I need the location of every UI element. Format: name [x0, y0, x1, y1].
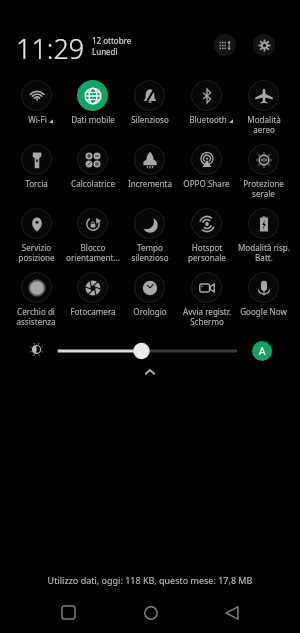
button[interactable]: Settings [253, 34, 275, 56]
button[interactable]: Protezione serale [235, 144, 292, 208]
button[interactable]: Hotspot personale [178, 208, 235, 272]
button[interactable]: Servizio posizione [8, 208, 64, 272]
button[interactable]: Home [130, 592, 171, 633]
staticText: Google Now [240, 306, 287, 317]
button[interactable]: Google Now [235, 272, 292, 336]
button[interactable]: Fotocamera [64, 272, 121, 336]
staticText: 11:29 [16, 30, 85, 67]
button[interactable]: OPPO Share [178, 144, 235, 208]
staticText: OPPO Share [183, 178, 230, 189]
staticText: Servizio posizione [18, 242, 55, 263]
button[interactable]: Bluetooth [178, 80, 235, 144]
staticText: Torcia [25, 178, 48, 189]
staticText: Orologio [133, 306, 167, 317]
staticText: Avvia registr. Schermo [183, 306, 231, 327]
button[interactable]: Wi-Fi [8, 80, 64, 144]
staticText: Hotspot personale [188, 242, 226, 263]
staticText: Tempo silenzioso [131, 242, 169, 263]
staticText: Cerchio di assistenza [16, 306, 56, 327]
staticText: Protezione serale [243, 178, 284, 199]
staticText: Bluetooth [189, 114, 227, 125]
staticText: Fotocamera [70, 306, 116, 317]
staticText: Modalità aereo [247, 114, 281, 135]
staticText: Calcolatrice [71, 178, 115, 189]
staticText: Silenzioso [131, 114, 169, 125]
button[interactable]: Calcolatrice [64, 144, 121, 208]
button[interactable]: Orologio [121, 272, 178, 336]
button[interactable]: Recents [48, 592, 89, 633]
staticText: Incrementa [128, 178, 172, 189]
button[interactable]: Edit tiles [214, 34, 236, 56]
button[interactable]: Incrementa [121, 144, 178, 208]
button[interactable]: Brightness slider [48, 340, 248, 362]
button[interactable]: Back [211, 592, 252, 633]
staticText: 12 ottobre [92, 35, 132, 46]
staticText: Lunedì [92, 46, 118, 57]
button[interactable]: Silenzioso [121, 80, 178, 144]
staticText: Dati mobile [71, 114, 115, 125]
button[interactable]: Brightness [29, 342, 44, 359]
staticText: Utilizzo dati, oggi: 118 KB, questo mese… [0, 574, 300, 586]
staticText: Modalità risp. Batt. [238, 242, 290, 263]
button[interactable]: Blocco orientament… [64, 208, 121, 272]
button[interactable]: Torcia [8, 144, 64, 208]
button[interactable]: Modalità aereo [235, 80, 292, 144]
button[interactable]: Cerchio di assistenza [8, 272, 64, 336]
staticText: Blocco orientament… [66, 242, 120, 263]
staticText: Wi-Fi [28, 114, 47, 125]
button[interactable]: Expand [142, 365, 158, 381]
button[interactable]: A [252, 341, 272, 361]
button[interactable]: Dati mobile [64, 80, 121, 144]
button[interactable]: Modalità risp. Batt. [235, 208, 292, 272]
staticText: A [259, 344, 266, 358]
button[interactable]: Tempo silenzioso [121, 208, 178, 272]
button[interactable]: Avvia registr. Schermo [178, 272, 235, 336]
